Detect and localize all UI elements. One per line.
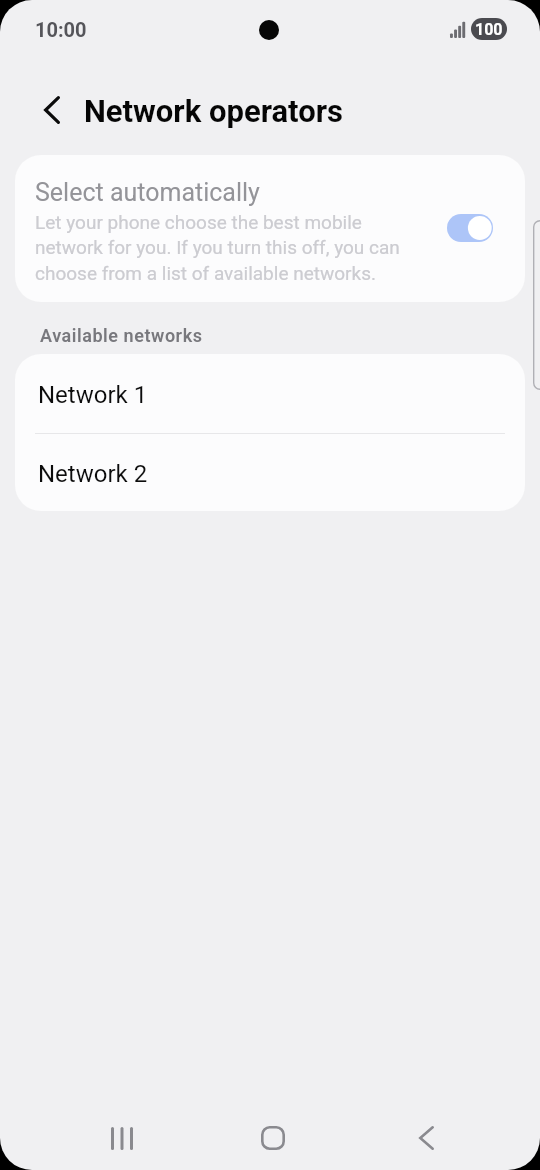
staticText: Let your phone choose the best mobile ne… bbox=[35, 211, 400, 285]
staticText: 10:00 bbox=[35, 18, 87, 41]
staticText: Network 2 bbox=[38, 460, 148, 488]
staticText: Available networks bbox=[40, 325, 203, 346]
staticText: 100 bbox=[475, 20, 503, 39]
button[interactable]: Home bbox=[243, 1108, 303, 1168]
button[interactable]: Network 1 bbox=[15, 354, 525, 433]
button[interactable]: Recents bbox=[92, 1108, 152, 1168]
staticText: Select automatically bbox=[35, 178, 260, 207]
button[interactable]: Back bbox=[30, 88, 74, 132]
button[interactable]: Select automatically bbox=[15, 155, 525, 302]
button[interactable]: Network 2 bbox=[15, 433, 525, 511]
button[interactable]: Select automatically toggle bbox=[434, 198, 506, 258]
staticText: Network operators bbox=[84, 93, 343, 129]
button[interactable]: Back bbox=[396, 1108, 456, 1168]
staticText: Network 1 bbox=[38, 381, 148, 409]
